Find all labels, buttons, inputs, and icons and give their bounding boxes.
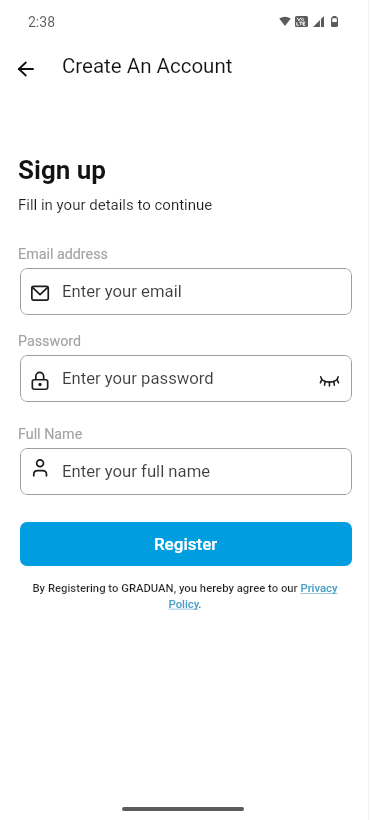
staticText: By Registering to GRADUAN, you hereby ag… <box>30 582 340 611</box>
button[interactable]: Back <box>3 47 47 91</box>
button[interactable]: Enter your password <box>20 355 352 402</box>
button[interactable]: Enter your full name <box>20 448 352 495</box>
staticText: Email address <box>18 246 108 263</box>
staticText: Enter your password <box>62 369 214 389</box>
staticText: Create An Account <box>62 54 233 78</box>
staticText: 2:38 <box>28 14 55 30</box>
button[interactable]: Register <box>20 522 352 566</box>
staticText: Sign up <box>18 155 106 185</box>
button[interactable]: By Registering to GRADUAN, you hereby ag… <box>30 582 340 611</box>
staticText: Fill in your details to continue <box>18 196 213 214</box>
staticText: Enter your full name <box>62 462 211 482</box>
staticText: Full Name <box>18 426 83 443</box>
staticText: Password <box>18 333 82 350</box>
button[interactable]: Show password <box>318 367 342 391</box>
staticText: Register <box>154 534 218 554</box>
staticText: Enter your email <box>62 282 182 302</box>
button[interactable]: Enter your email <box>20 268 352 315</box>
